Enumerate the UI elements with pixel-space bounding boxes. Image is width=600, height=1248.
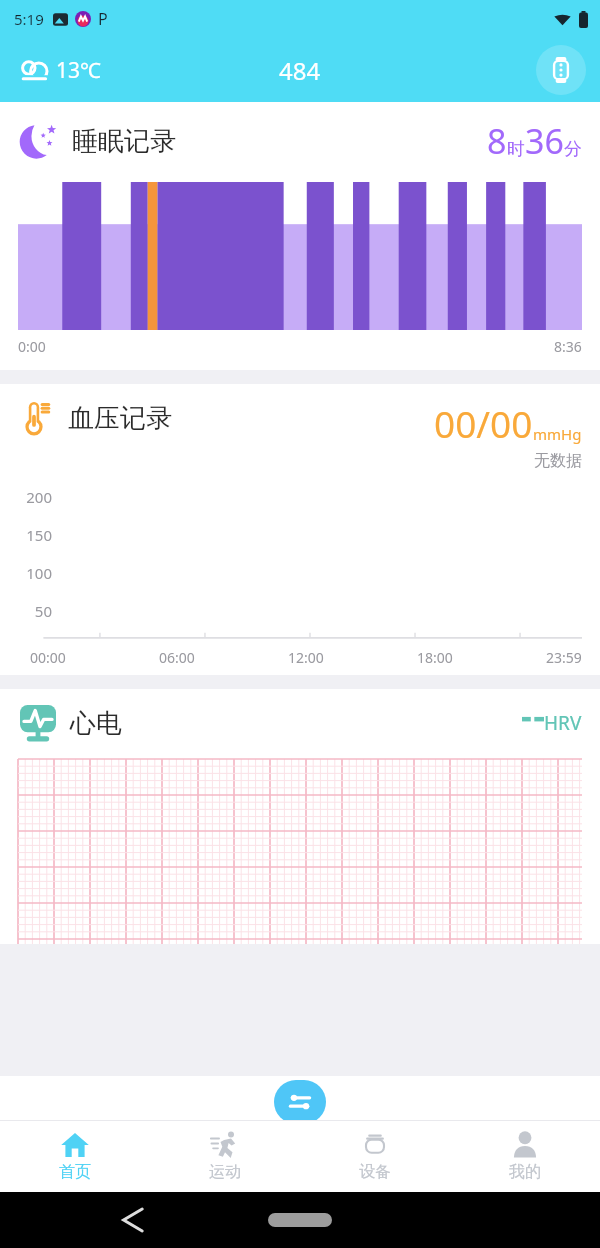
- staticText: 50: [18, 601, 52, 621]
- staticText: 484: [279, 54, 321, 87]
- staticText: HRV: [544, 710, 582, 736]
- staticText: 5:19: [14, 9, 44, 29]
- button[interactable]: 我的: [450, 1120, 600, 1192]
- staticText: 睡眠记录: [72, 125, 176, 158]
- staticText: 12:00: [288, 648, 324, 667]
- staticText: 时: [507, 138, 525, 161]
- staticText: 18:00: [417, 648, 453, 667]
- staticText: 8: [487, 118, 507, 164]
- staticText: 00/00: [434, 398, 533, 448]
- staticText: 无数据: [534, 451, 582, 471]
- button[interactable]: Measure: [274, 1080, 326, 1124]
- button[interactable]: 首页: [0, 1120, 150, 1192]
- staticText: 06:00: [159, 648, 195, 667]
- staticText: 200: [18, 487, 52, 507]
- staticText: 我的: [509, 1162, 541, 1182]
- staticText: 23:59: [546, 648, 582, 667]
- staticText: 首页: [59, 1162, 91, 1182]
- staticText: 150: [18, 525, 52, 545]
- button[interactable]: 运动: [150, 1120, 300, 1192]
- staticText: P: [98, 8, 108, 30]
- staticText: 0:00: [18, 337, 46, 356]
- staticText: 36: [525, 118, 564, 164]
- staticText: 00:00: [30, 648, 66, 667]
- staticText: 13℃: [56, 56, 101, 85]
- staticText: 100: [18, 563, 52, 583]
- button[interactable]: 心电: [0, 689, 600, 944]
- button[interactable]: 13℃: [12, 50, 103, 90]
- staticText: 8:36: [554, 337, 582, 356]
- staticText: 血压记录: [68, 402, 172, 435]
- button[interactable]: 睡眠记录: [0, 102, 600, 370]
- button[interactable]: 设备: [300, 1120, 450, 1192]
- staticText: 心电: [70, 707, 122, 740]
- staticText: 设备: [359, 1162, 391, 1182]
- button[interactable]: Device: [536, 45, 586, 95]
- staticText: mmHg: [533, 424, 582, 444]
- button[interactable]: 血压记录: [0, 384, 600, 675]
- staticText: 运动: [209, 1162, 241, 1182]
- staticText: 分: [564, 138, 582, 161]
